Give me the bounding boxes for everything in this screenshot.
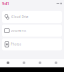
staticText: Photos	[11, 43, 21, 46]
button[interactable]: Tab	[16, 59, 32, 67]
button[interactable]: Tab	[32, 59, 48, 67]
staticText: iCloud Drive	[11, 15, 29, 19]
button[interactable]: Photos	[2, 38, 62, 50]
button[interactable]: iCloud Drive	[2, 11, 62, 23]
button[interactable]: Tab	[48, 59, 64, 67]
button[interactable]: Tab	[0, 59, 16, 67]
staticText: Documents	[11, 29, 26, 32]
staticText: 9:41	[2, 1, 9, 6]
button[interactable]: Documents	[2, 25, 62, 37]
